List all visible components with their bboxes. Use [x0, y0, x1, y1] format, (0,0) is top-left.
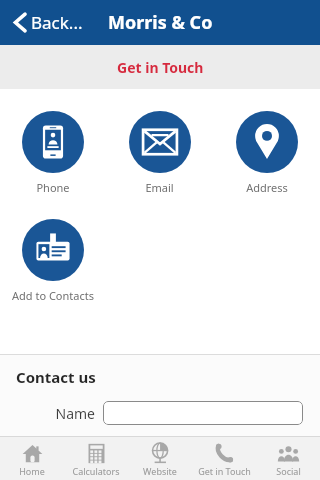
- button[interactable]: [103, 401, 303, 425]
- button[interactable]: Home: [0, 439, 64, 480]
- button[interactable]: Website: [128, 439, 192, 480]
- staticText: Get in Touch: [198, 465, 251, 477]
- staticText: Contact us: [16, 367, 96, 387]
- staticText: Calculators: [72, 465, 120, 477]
- button[interactable]: Email: [106, 109, 213, 197]
- staticText: Address: [246, 180, 288, 195]
- button[interactable]: Address: [213, 109, 320, 197]
- staticText: Get in Touch: [117, 58, 204, 77]
- staticText: Name: [0, 404, 95, 423]
- staticText: Home: [19, 465, 45, 477]
- button[interactable]: Phone: [0, 109, 106, 197]
- button[interactable]: Add to Contacts: [0, 217, 106, 305]
- staticText: Add to Contacts: [12, 288, 94, 303]
- staticText: Social: [276, 465, 301, 477]
- staticText: Email: [145, 180, 174, 195]
- staticText: Phone: [36, 180, 70, 195]
- button[interactable]: Get in Touch: [192, 439, 256, 480]
- staticText: Back...: [31, 11, 83, 34]
- button[interactable]: Social: [256, 439, 320, 480]
- staticText: Morris & Co: [108, 10, 213, 35]
- staticText: Website: [143, 465, 177, 477]
- button[interactable]: Back...: [10, 7, 87, 38]
- button[interactable]: Calculators: [64, 439, 128, 480]
